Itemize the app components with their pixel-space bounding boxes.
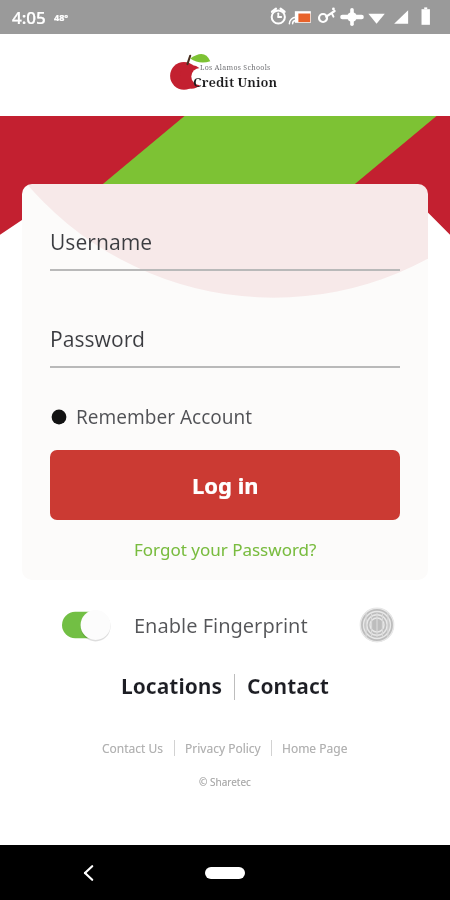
button[interactable]: Home Page [272, 737, 358, 759]
button[interactable]: Fingerprint [360, 608, 394, 642]
staticText: Los Alamos Schools [200, 63, 271, 73]
staticText: Log in [192, 470, 259, 500]
button[interactable]: Contact [235, 668, 341, 705]
staticText: 48° [54, 11, 69, 23]
button[interactable]: Remember Account [50, 404, 400, 430]
button[interactable]: Log in [50, 450, 400, 520]
staticText: Contact [247, 672, 329, 701]
staticText: 4:05 [12, 6, 46, 29]
button[interactable]: Privacy Policy [175, 737, 271, 759]
staticText: Forgot your Password? [134, 538, 317, 561]
button[interactable]: Contact Us [92, 737, 174, 759]
button[interactable]: Enable Fingerprint toggle [62, 610, 118, 640]
button[interactable]: Password [50, 325, 400, 368]
button[interactable]: Forgot your Password? [50, 538, 400, 561]
staticText: Locations [121, 672, 222, 701]
staticText: Home Page [282, 740, 348, 756]
staticText: Enable Fingerprint [134, 612, 308, 639]
staticText: © Sharetec [0, 775, 450, 789]
button[interactable]: Home [205, 867, 245, 879]
button[interactable]: Username [50, 228, 400, 271]
button[interactable]: Back [72, 856, 106, 890]
staticText: Username [50, 228, 153, 257]
staticText: Contact Us [102, 740, 164, 756]
staticText: Privacy Policy [185, 740, 261, 756]
staticText: Credit Union [193, 73, 278, 91]
staticText: Remember Account [76, 404, 253, 430]
button[interactable]: Locations [109, 668, 234, 705]
staticText: Password [50, 325, 145, 354]
